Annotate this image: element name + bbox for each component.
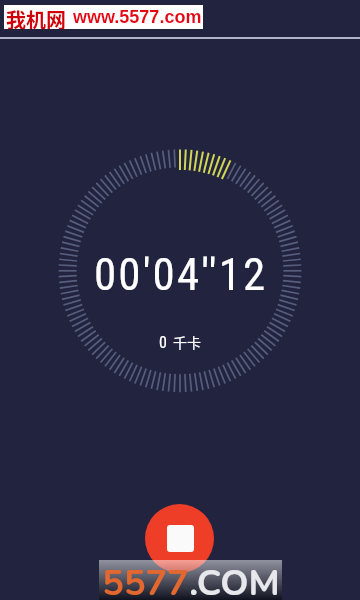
button[interactable]: Stop — [145, 504, 214, 573]
staticText: 我机网 — [6, 5, 66, 29]
staticText: 0 — [159, 333, 167, 352]
staticText: www.5577.com — [73, 7, 202, 27]
staticText: .COM — [189, 559, 280, 599]
staticText: 00'04''12 — [94, 248, 268, 300]
staticText: 千卡 — [173, 332, 201, 352]
staticText: 5577 — [102, 559, 189, 599]
